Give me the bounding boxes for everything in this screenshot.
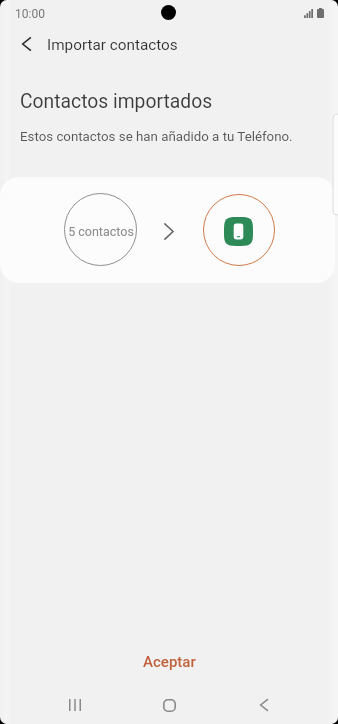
staticText: 5 contactos [68, 224, 134, 239]
button[interactable]: Back [241, 686, 286, 724]
button[interactable]: Aceptar [0, 645, 338, 679]
staticText: 10:00 [15, 7, 45, 21]
staticText: Importar contactos [47, 36, 178, 54]
button[interactable]: Recent apps [52, 686, 97, 724]
button[interactable]: 5 contactos [0, 177, 335, 283]
staticText: Contactos importados [20, 90, 213, 113]
button[interactable]: Back [8, 26, 44, 62]
button[interactable]: Home [147, 686, 192, 724]
staticText: Aceptar [143, 653, 196, 671]
staticText: Estos contactos se han añadido a tu Telé… [20, 129, 293, 145]
